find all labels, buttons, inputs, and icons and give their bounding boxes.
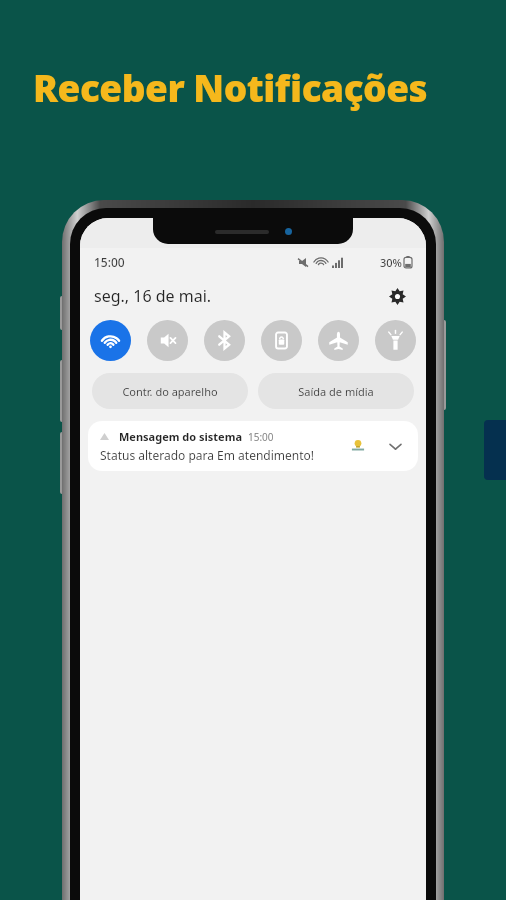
button[interactable]: Mensagem do sistema (88, 421, 418, 471)
staticText: 30% (380, 255, 402, 270)
button[interactable]: Auto rotate (261, 320, 302, 361)
staticText: Saída de mídia (298, 384, 374, 399)
button[interactable]: Expand (384, 435, 406, 457)
staticText: Contr. do aparelho (122, 384, 218, 399)
button[interactable]: Bluetooth (204, 320, 245, 361)
button[interactable]: Settings (382, 281, 412, 311)
button[interactable]: Mute (147, 320, 188, 361)
button[interactable]: Saída de mídia (258, 373, 414, 409)
button[interactable]: Airplane mode (318, 320, 359, 361)
staticText: Receber Notificações (33, 62, 428, 112)
button[interactable]: Contr. do aparelho (92, 373, 248, 409)
button[interactable]: Wi-Fi (90, 320, 131, 361)
button[interactable]: Flashlight (375, 320, 416, 361)
staticText: Status alterado para Em atendimento! (100, 447, 315, 463)
staticText: 15:00 (248, 430, 274, 444)
staticText: seg., 16 de mai. (94, 285, 212, 307)
staticText: 15:00 (94, 254, 125, 270)
staticText: Mensagem do sistema (119, 429, 242, 444)
